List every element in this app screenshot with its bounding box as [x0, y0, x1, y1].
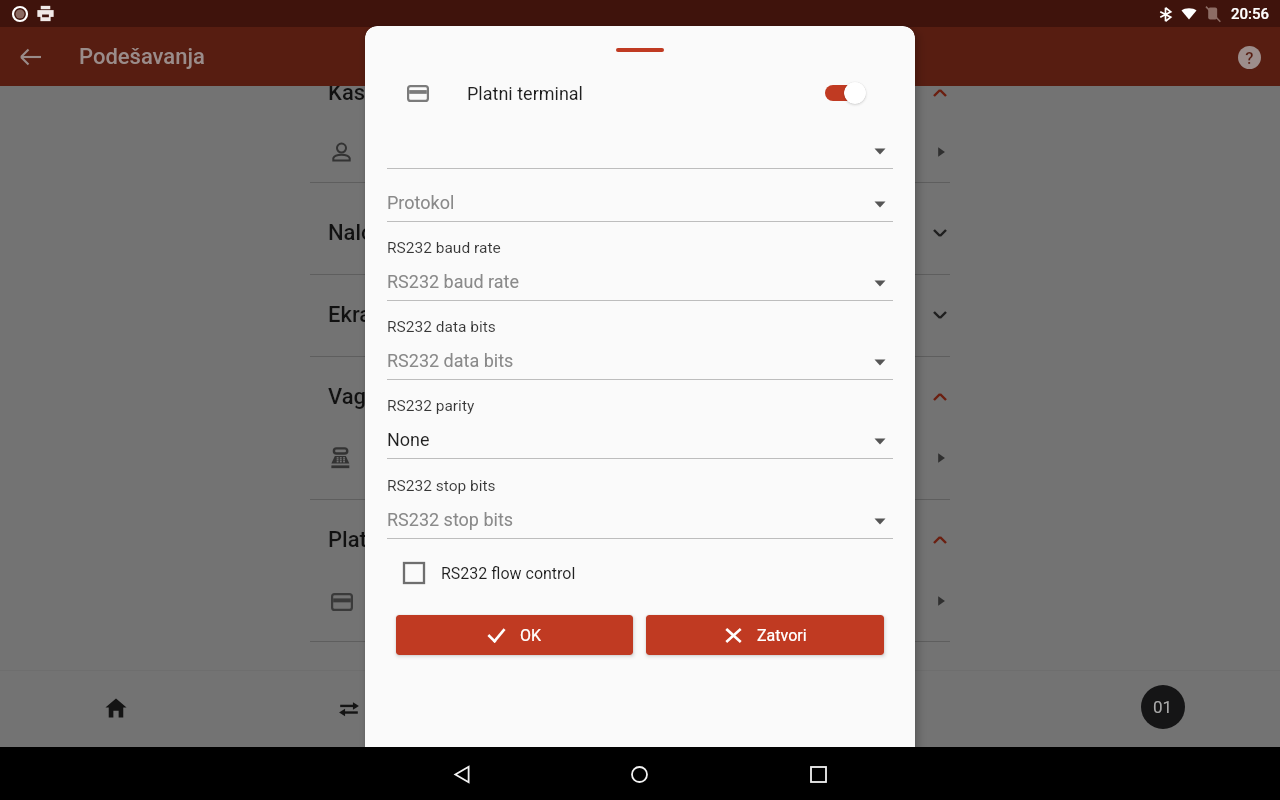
staticText: Platni terminal — [328, 527, 472, 553]
staticText: RS232 stop bits — [387, 509, 514, 530]
button[interactable]: Naloge — [290, 208, 970, 258]
staticText: OK — [520, 626, 542, 645]
staticText: 01 — [1153, 697, 1173, 717]
button[interactable]: Back — [438, 750, 486, 798]
button[interactable]: Ekrani — [290, 290, 970, 340]
button[interactable]: RS232 parity — [387, 395, 893, 462]
staticText: RS232 baud rate — [387, 271, 520, 292]
staticText: Kasa — [328, 86, 377, 106]
staticText: Podešavanja — [79, 44, 205, 70]
button[interactable]: OK — [396, 615, 633, 655]
button[interactable]: RS232 baud rate — [387, 236, 893, 304]
staticText: Zatvori — [757, 626, 807, 645]
button[interactable]: RS232 data bits — [387, 316, 893, 383]
button[interactable] — [290, 579, 970, 623]
staticText: RS232 parity — [387, 397, 475, 415]
button[interactable] — [290, 130, 970, 174]
staticText: Naloge — [328, 220, 398, 246]
staticText: RS232 flow control — [441, 564, 576, 583]
button[interactable]: Home — [92, 684, 140, 732]
button[interactable]: Platni terminal — [290, 515, 970, 565]
button[interactable] — [290, 436, 970, 480]
staticText: Platni terminal — [467, 83, 583, 104]
staticText: Vaga — [328, 384, 378, 410]
button[interactable]: Zatvori — [646, 615, 884, 655]
button[interactable]: Home — [615, 750, 663, 798]
button[interactable]: Help — [1234, 42, 1264, 72]
staticText: Ekrani — [328, 302, 390, 328]
button[interactable]: RS232 flow control — [404, 553, 576, 593]
staticText: Protokol — [387, 192, 455, 213]
button[interactable]: Kasa — [290, 86, 970, 118]
button[interactable]: Vaga — [290, 372, 970, 422]
staticText: RS232 data bits — [387, 350, 514, 371]
staticText: RS232 data bits — [387, 318, 496, 336]
staticText: 20:56 — [1231, 5, 1270, 23]
button[interactable]: Transfer — [325, 685, 373, 733]
staticText: ? — [1245, 48, 1254, 68]
staticText: RS232 stop bits — [387, 477, 496, 495]
button[interactable] — [387, 134, 893, 172]
button[interactable]: RS232 stop bits — [387, 474, 893, 542]
button[interactable]: Back — [10, 36, 52, 78]
staticText: None — [387, 429, 430, 450]
staticText: RS232 baud rate — [387, 239, 501, 257]
button[interactable]: 01 — [1141, 685, 1185, 729]
button[interactable] — [825, 81, 867, 105]
button[interactable]: Recents — [794, 750, 842, 798]
button[interactable]: Protokol — [387, 191, 893, 225]
button[interactable]: Platni terminal — [365, 70, 915, 116]
